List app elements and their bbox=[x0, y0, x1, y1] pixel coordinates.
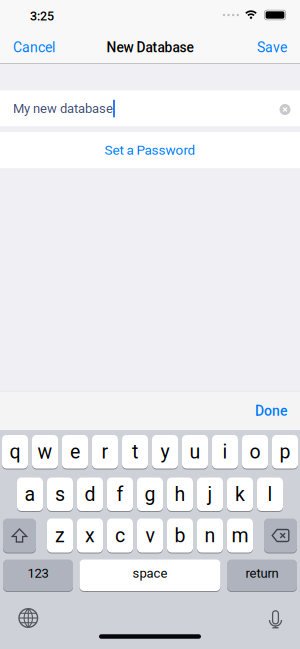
staticText: z bbox=[55, 524, 65, 547]
button[interactable]: r bbox=[92, 435, 118, 468]
button[interactable]: b bbox=[167, 518, 193, 552]
staticText: Set a Password bbox=[104, 142, 195, 158]
button[interactable]: Next keyboard bbox=[18, 608, 38, 628]
staticText: f bbox=[116, 483, 123, 506]
button[interactable]: g bbox=[137, 477, 163, 511]
staticText: b bbox=[174, 524, 185, 547]
button[interactable]: Set a Password bbox=[0, 132, 300, 168]
button[interactable]: return bbox=[227, 559, 297, 591]
staticText: r bbox=[101, 440, 108, 463]
staticText: My new database bbox=[13, 101, 113, 116]
staticText: t bbox=[132, 440, 138, 463]
button[interactable]: d bbox=[77, 477, 103, 511]
staticText: p bbox=[279, 440, 290, 463]
staticText: a bbox=[24, 483, 35, 506]
staticText: h bbox=[174, 483, 185, 506]
button[interactable]: f bbox=[107, 477, 133, 511]
button[interactable]: Done bbox=[255, 403, 287, 419]
button[interactable]: Cancel bbox=[13, 38, 55, 55]
staticText: i bbox=[222, 440, 227, 463]
button[interactable]: Shift bbox=[3, 518, 36, 552]
staticText: New Database bbox=[106, 39, 193, 56]
button[interactable]: p bbox=[272, 435, 298, 468]
button[interactable]: Dictate bbox=[269, 609, 282, 628]
staticText: q bbox=[9, 440, 20, 463]
button[interactable]: z bbox=[47, 518, 73, 552]
staticText: d bbox=[84, 483, 95, 506]
button[interactable]: Delete bbox=[264, 518, 297, 552]
button[interactable]: a bbox=[17, 477, 43, 511]
button[interactable]: x bbox=[77, 518, 103, 552]
staticText: k bbox=[235, 483, 245, 506]
button[interactable]: v bbox=[137, 518, 163, 552]
button[interactable]: w bbox=[32, 435, 58, 468]
button[interactable]: Save bbox=[257, 38, 287, 55]
button[interactable]: o bbox=[242, 435, 268, 468]
staticText: j bbox=[207, 483, 212, 506]
staticText: v bbox=[145, 524, 154, 547]
button[interactable]: y bbox=[152, 435, 178, 468]
staticText: 3:25 bbox=[30, 9, 54, 23]
staticText: c bbox=[115, 524, 125, 547]
staticText: y bbox=[160, 440, 169, 463]
staticText: w bbox=[37, 440, 52, 463]
staticText: s bbox=[55, 483, 65, 506]
button[interactable]: k bbox=[227, 477, 253, 511]
staticText: x bbox=[85, 524, 95, 547]
staticText: g bbox=[144, 483, 155, 506]
button[interactable]: n bbox=[197, 518, 223, 552]
button[interactable]: My new database bbox=[0, 90, 300, 126]
button[interactable]: m bbox=[227, 518, 253, 552]
staticText: l bbox=[267, 483, 272, 506]
staticText: space bbox=[132, 566, 167, 581]
button[interactable]: j bbox=[197, 477, 223, 511]
button[interactable]: i bbox=[212, 435, 238, 468]
button[interactable]: 123 bbox=[3, 559, 73, 591]
button[interactable]: space bbox=[79, 559, 220, 591]
staticText: return bbox=[245, 566, 278, 581]
staticText: 123 bbox=[27, 566, 48, 581]
staticText: o bbox=[249, 440, 260, 463]
staticText: u bbox=[189, 440, 200, 463]
staticText: Done bbox=[255, 403, 287, 419]
staticText: Cancel bbox=[13, 39, 55, 56]
button[interactable]: l bbox=[257, 477, 283, 511]
staticText: e bbox=[70, 440, 80, 463]
button[interactable]: h bbox=[167, 477, 193, 511]
button[interactable]: u bbox=[182, 435, 208, 468]
staticText: m bbox=[231, 524, 248, 547]
button[interactable]: t bbox=[122, 435, 148, 468]
button[interactable]: Clear text bbox=[279, 104, 290, 115]
button[interactable]: c bbox=[107, 518, 133, 552]
button[interactable]: s bbox=[47, 477, 73, 511]
button[interactable]: q bbox=[2, 435, 28, 468]
staticText: n bbox=[204, 524, 215, 547]
staticText: Save bbox=[257, 39, 287, 56]
button[interactable]: e bbox=[62, 435, 88, 468]
